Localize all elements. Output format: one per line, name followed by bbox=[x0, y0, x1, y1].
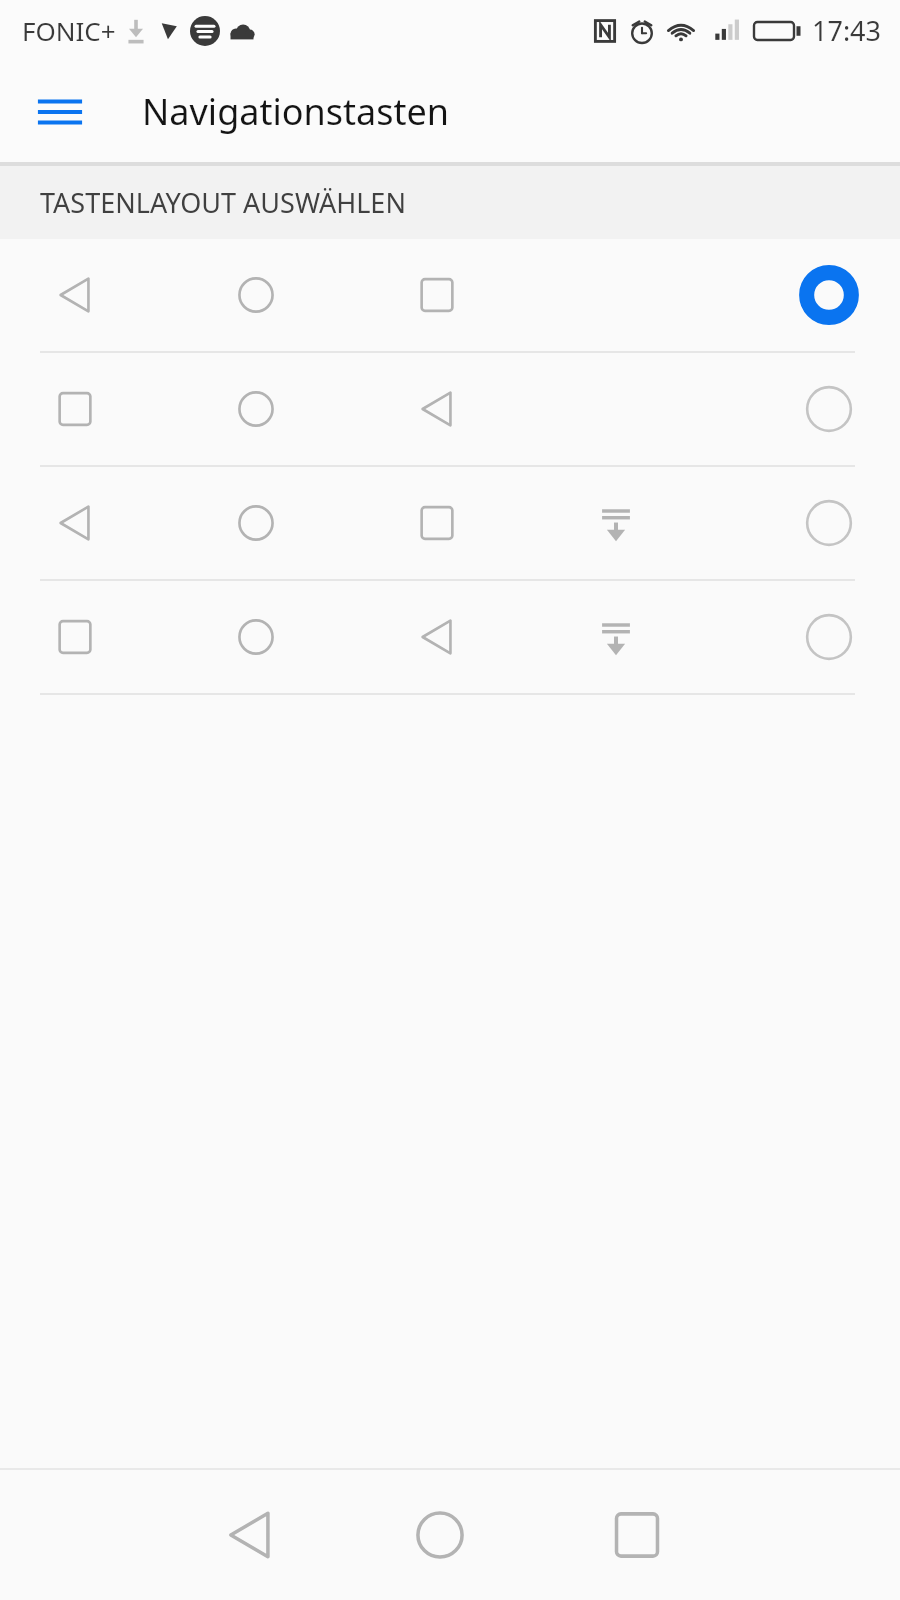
button[interactable]: Menü bbox=[26, 78, 94, 146]
staticText: FONIC+ bbox=[22, 13, 116, 48]
button[interactable] bbox=[0, 581, 900, 695]
button[interactable]: Startbildschirm bbox=[408, 1503, 472, 1567]
button[interactable] bbox=[0, 239, 900, 353]
button[interactable]: Übersicht bbox=[605, 1503, 669, 1567]
staticText: TASTENLAYOUT AUSWÄHLEN bbox=[40, 184, 406, 221]
staticText: 17:43 bbox=[812, 12, 882, 49]
button[interactable] bbox=[0, 467, 900, 581]
button[interactable]: Zurück bbox=[218, 1503, 282, 1567]
staticText: Navigationstasten bbox=[142, 87, 450, 136]
button[interactable] bbox=[0, 353, 900, 467]
